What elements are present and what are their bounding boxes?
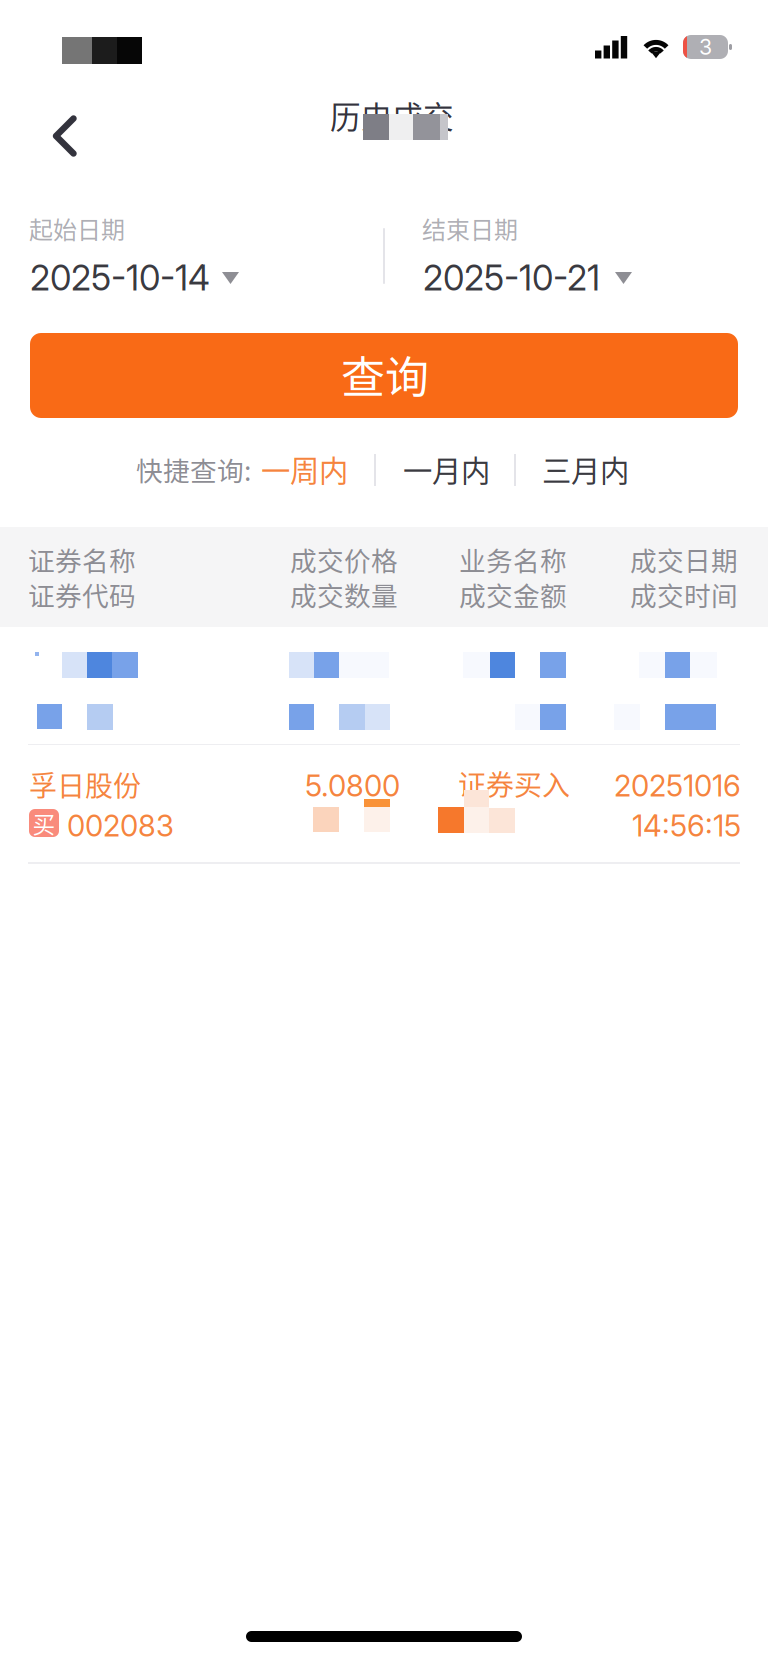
- button[interactable]: Back: [27, 98, 103, 174]
- staticText: 成交金额: [459, 575, 567, 614]
- staticText: 查询: [341, 343, 429, 406]
- staticText: 业务名称: [459, 540, 567, 579]
- staticText: 成交时间: [630, 575, 738, 614]
- button[interactable]: 一月内: [403, 446, 495, 492]
- staticText: 002083: [67, 808, 174, 843]
- staticText: 3: [699, 34, 712, 60]
- staticText: 起始日期: [29, 211, 125, 246]
- button[interactable]: 三月内: [542, 446, 634, 492]
- staticText: 历史成交: [330, 93, 454, 137]
- staticText: 一周内: [261, 448, 348, 490]
- staticText: 证券名称: [28, 540, 136, 579]
- staticText: 证券代码: [28, 575, 136, 614]
- button[interactable]: 起始日期: [29, 211, 339, 303]
- button[interactable]: 结束日期: [422, 211, 732, 303]
- staticText: 一月内: [403, 448, 490, 490]
- staticText: 14:56:15: [632, 808, 741, 843]
- staticText: 孚日股份: [29, 764, 141, 804]
- staticText: 5.0800: [305, 768, 400, 803]
- button[interactable]: 查询: [30, 333, 738, 418]
- staticText: 结束日期: [422, 211, 518, 246]
- staticText: 2025-10-21: [423, 257, 600, 299]
- button[interactable]: Transaction row: [0, 627, 768, 745]
- staticText: 成交数量: [290, 575, 398, 614]
- staticText: 证券买入: [458, 763, 570, 803]
- staticText: 成交价格: [290, 540, 398, 579]
- staticText: 20251016: [614, 768, 741, 803]
- staticText: 成交日期: [630, 540, 738, 579]
- button[interactable]: 一周内: [261, 446, 353, 492]
- staticText: 2025-10-14: [30, 257, 210, 299]
- button[interactable]: 孚日股份 002083 证券买入 5.0800: [0, 745, 768, 863]
- staticText: 快捷查询:: [136, 450, 251, 489]
- staticText: 买: [32, 807, 55, 839]
- staticText: 三月内: [542, 448, 629, 490]
